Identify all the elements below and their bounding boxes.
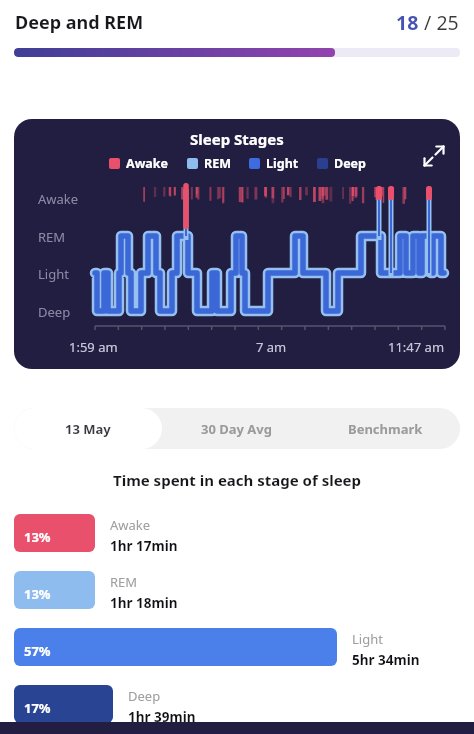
staticText: 1hr 18min	[110, 594, 178, 612]
staticText: REM	[204, 155, 231, 172]
staticText: Deep	[38, 303, 71, 321]
staticText: Light	[38, 265, 69, 283]
staticText: 5hr 34min	[352, 651, 420, 669]
button[interactable]: 13 May	[14, 408, 162, 449]
staticText: 13%	[24, 585, 51, 603]
staticText: Deep and REM	[15, 10, 144, 35]
staticText: REM	[110, 573, 138, 591]
staticText: / 25	[419, 9, 459, 36]
staticText: 30 Day Avg	[201, 420, 272, 438]
staticText: 1:59 am	[69, 338, 118, 356]
staticText: Awake	[38, 190, 79, 208]
staticText: 13%	[24, 528, 51, 546]
staticText: Light	[266, 155, 299, 172]
staticText: Light	[352, 630, 383, 648]
staticText: 18	[396, 9, 419, 36]
staticText: Deep	[128, 687, 161, 705]
button[interactable]	[421, 143, 447, 169]
staticText: Awake	[126, 155, 169, 172]
staticText: Deep	[334, 155, 366, 172]
staticText: 17%	[24, 699, 51, 717]
staticText: 57%	[24, 642, 51, 660]
staticText: 7 am	[256, 338, 287, 356]
button[interactable]: Benchmark	[311, 408, 460, 449]
staticText: Sleep Stages	[190, 129, 284, 149]
staticText: Time spent in each stage of sleep	[113, 470, 362, 490]
staticText: Awake	[110, 516, 151, 534]
staticText: 1hr 39min	[128, 708, 196, 726]
staticText: 11:47 am	[388, 338, 445, 356]
staticText: 1hr 17min	[110, 537, 178, 555]
staticText: Benchmark	[348, 420, 423, 438]
staticText: 13 May	[65, 420, 111, 438]
button[interactable]: 30 Day Avg	[162, 408, 311, 449]
staticText: REM	[38, 228, 66, 246]
